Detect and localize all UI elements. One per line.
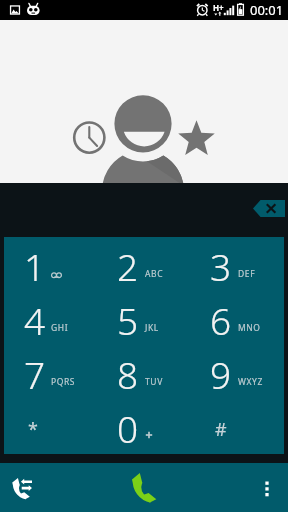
staticText: TUV xyxy=(145,376,163,388)
button[interactable]: 7 xyxy=(4,346,98,400)
button[interactable]: Call log xyxy=(0,463,46,512)
button[interactable]: Dial pad xyxy=(116,463,172,512)
staticText: PQRS xyxy=(51,376,76,388)
staticText: * xyxy=(28,417,38,442)
staticText: 4 xyxy=(24,295,46,345)
button[interactable]: Backspace xyxy=(252,198,286,218)
button[interactable]: 2 xyxy=(98,237,191,292)
staticText: JKL xyxy=(145,322,159,334)
button[interactable]: 6 xyxy=(191,292,284,346)
staticText: ABC xyxy=(145,268,164,280)
staticText: DEF xyxy=(238,268,256,280)
staticText: # xyxy=(215,417,227,442)
staticText: H+ xyxy=(213,2,224,13)
button[interactable]: * xyxy=(4,400,98,454)
button[interactable]: 8 xyxy=(98,346,191,400)
staticText: 5 xyxy=(117,295,139,345)
staticText: WXYZ xyxy=(238,376,263,388)
button[interactable]: 4 xyxy=(4,292,98,346)
staticText: 3 xyxy=(210,241,232,291)
staticText: 7 xyxy=(24,349,46,399)
button[interactable]: 1 xyxy=(4,237,98,292)
staticText: 8 xyxy=(117,349,139,399)
staticText: 0 xyxy=(117,403,139,453)
button[interactable]: 3 xyxy=(191,237,284,292)
button[interactable]: 0 xyxy=(98,400,191,454)
staticText: GHI xyxy=(51,322,69,334)
staticText: MNO xyxy=(238,322,261,334)
staticText: 9 xyxy=(210,349,232,399)
staticText: 00:01 xyxy=(250,1,284,19)
staticText: 1 xyxy=(24,241,46,291)
staticText: 6 xyxy=(210,295,232,345)
button[interactable]: 9 xyxy=(191,346,284,400)
button[interactable]: More options xyxy=(246,463,288,512)
staticText: 2 xyxy=(117,241,139,291)
button[interactable]: # xyxy=(191,400,284,454)
button[interactable]: 5 xyxy=(98,292,191,346)
